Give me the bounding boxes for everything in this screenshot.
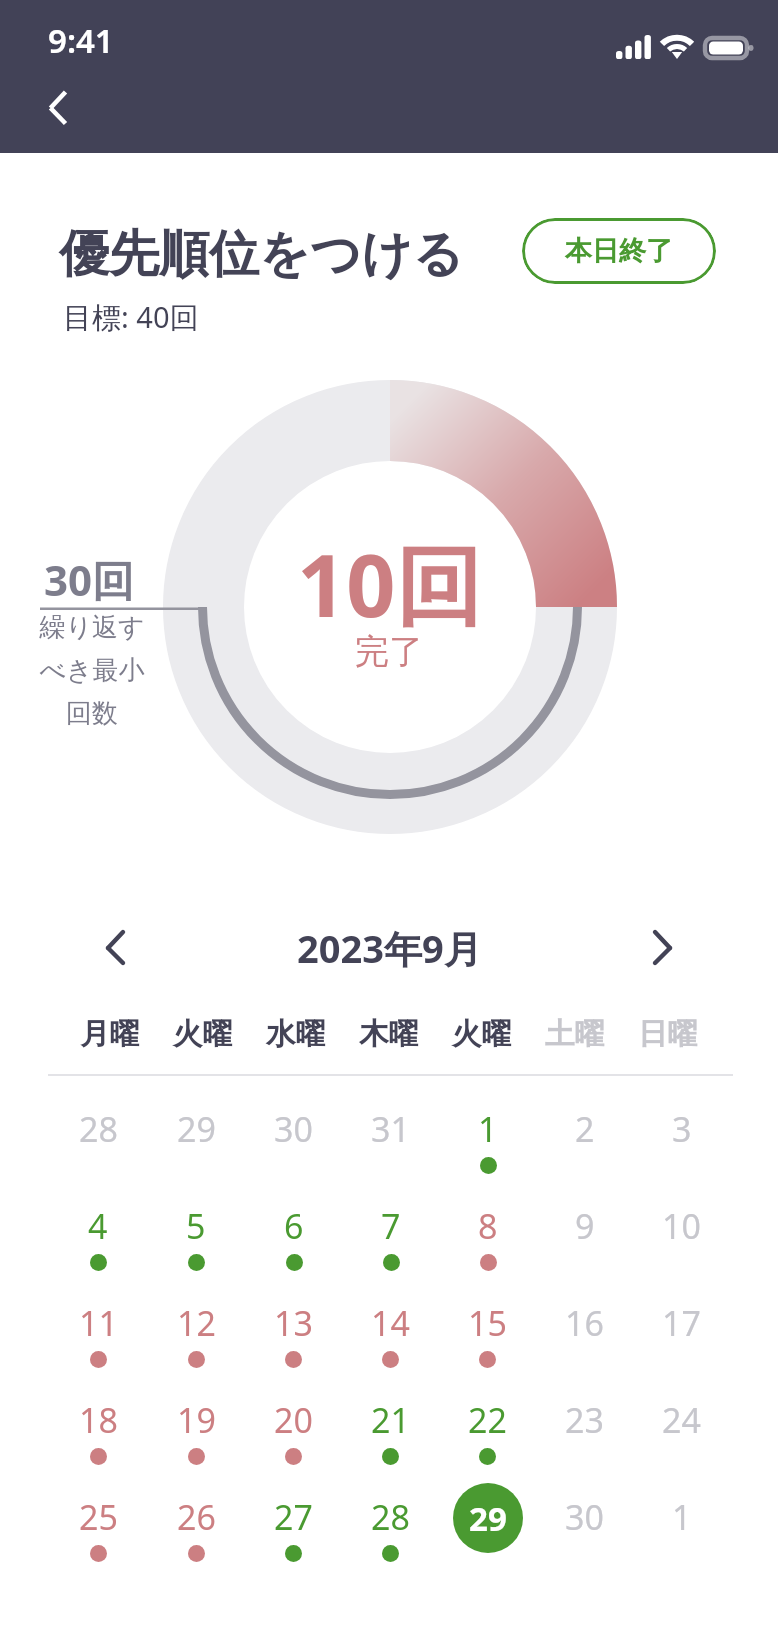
button[interactable]: 14 [342,1292,439,1389]
staticText: 7 [381,1203,401,1249]
button[interactable]: Back [22,80,78,136]
staticText: 30 [565,1494,604,1540]
button[interactable]: 1 [439,1098,536,1195]
button[interactable]: 29 [439,1486,536,1583]
staticText: 4 [88,1203,108,1249]
staticText: 2023年9月 [297,922,482,974]
staticText: 22 [468,1397,507,1443]
button[interactable]: 19 [147,1389,245,1486]
button[interactable]: 27 [245,1486,342,1583]
button[interactable]: 29 [147,1098,245,1195]
button[interactable]: 6 [245,1195,342,1292]
button[interactable]: 2 [536,1098,633,1195]
staticText: 本日終了 [565,234,673,268]
button[interactable]: 13 [245,1292,342,1389]
staticText: 10回 [297,525,482,642]
button[interactable]: 7 [342,1195,439,1292]
button[interactable]: 1 [633,1486,730,1583]
staticText: 20 [274,1397,313,1443]
staticText: 6 [284,1203,304,1249]
button[interactable]: 22 [439,1389,536,1486]
staticText: 29 [469,1496,507,1541]
button[interactable]: 28 [342,1486,439,1583]
button[interactable]: 11 [49,1292,147,1389]
button[interactable]: 30 [536,1486,633,1583]
staticText: 1 [672,1494,692,1540]
staticText: 14 [371,1300,410,1346]
staticText: 30 [274,1106,313,1152]
button[interactable]: 25 [49,1486,147,1583]
staticText: 30回 [44,551,135,608]
button[interactable]: 5 [147,1195,245,1292]
staticText: 24 [662,1397,701,1443]
staticText: 1 [478,1106,498,1152]
staticText: 19 [177,1397,216,1443]
staticText: 28 [371,1494,410,1540]
button[interactable]: 16 [536,1292,633,1389]
staticText: 2 [575,1106,595,1152]
button[interactable]: 3 [633,1098,730,1195]
staticText: 23 [565,1397,604,1443]
button[interactable]: 15 [439,1292,536,1389]
staticText: 月曜 [80,1016,139,1053]
staticText: 9 [575,1203,595,1249]
staticText: 日曜 [638,1016,697,1053]
button[interactable]: Previous month [78,918,138,978]
button[interactable]: 17 [633,1292,730,1389]
staticText: 15 [468,1300,507,1346]
staticText: 12 [177,1300,216,1346]
button[interactable]: 24 [633,1389,730,1486]
button[interactable]: 20 [245,1389,342,1486]
staticText: 繰り返す べき最小 回数 [36,611,148,730]
button[interactable]: 30 [245,1098,342,1195]
staticText: 優先順位をつける [59,223,464,286]
button[interactable]: Next month [640,918,700,978]
staticText: 9:41 [48,18,114,63]
staticText: 8 [478,1203,498,1249]
button[interactable]: 28 [49,1098,147,1195]
button[interactable]: 8 [439,1195,536,1292]
staticText: 17 [662,1300,701,1346]
button[interactable]: 18 [49,1389,147,1486]
button[interactable]: 12 [147,1292,245,1389]
staticText: 11 [79,1300,118,1346]
staticText: 16 [565,1300,604,1346]
button[interactable]: 31 [342,1098,439,1195]
staticText: 18 [79,1397,118,1443]
staticText: 完了 [355,630,423,673]
staticText: 10 [662,1203,701,1249]
button[interactable]: 本日終了 [522,218,716,284]
staticText: 木曜 [359,1016,418,1053]
staticText: 25 [79,1494,118,1540]
button[interactable]: 23 [536,1389,633,1486]
button[interactable]: 21 [342,1389,439,1486]
staticText: 13 [274,1300,313,1346]
button[interactable]: 26 [147,1486,245,1583]
staticText: 27 [274,1494,313,1540]
button[interactable]: 9 [536,1195,633,1292]
staticText: 31 [371,1106,410,1152]
staticText: 28 [79,1106,118,1152]
staticText: 目標: 40回 [63,297,199,337]
staticText: 26 [177,1494,216,1540]
staticText: 土曜 [545,1016,604,1053]
button[interactable]: 10 [633,1195,730,1292]
staticText: 火曜 [173,1016,232,1053]
staticText: 3 [672,1106,692,1152]
staticText: 21 [371,1397,410,1443]
staticText: 29 [177,1106,216,1152]
button[interactable]: 4 [49,1195,147,1292]
staticText: 火曜 [452,1016,511,1053]
staticText: 水曜 [266,1016,325,1053]
staticText: 5 [186,1203,206,1249]
